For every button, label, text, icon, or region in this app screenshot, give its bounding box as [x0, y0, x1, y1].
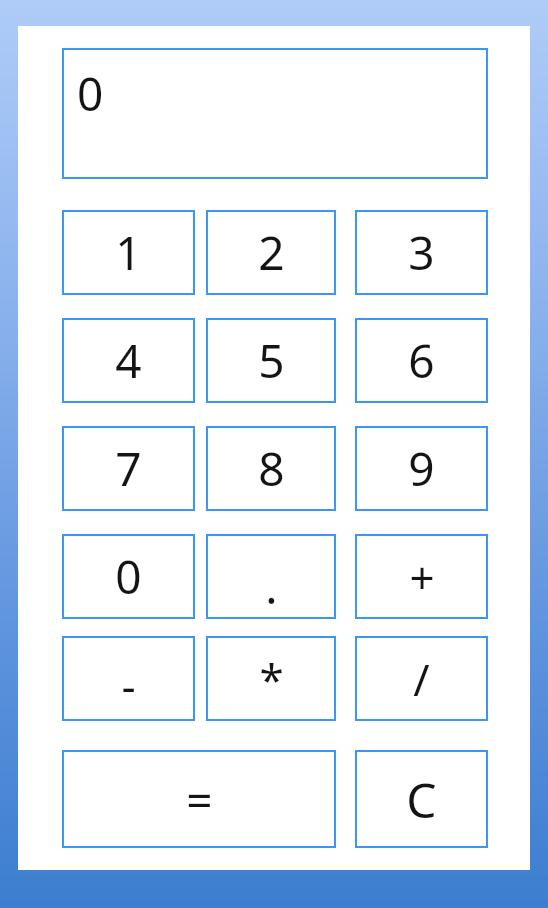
staticText: 0	[77, 62, 104, 125]
button[interactable]: 3	[355, 210, 488, 295]
button[interactable]: Divide	[355, 636, 488, 721]
staticText: 3	[408, 221, 435, 284]
staticText: 1	[115, 221, 142, 284]
staticText: *	[259, 649, 284, 709]
button[interactable]: 1	[62, 210, 195, 295]
staticText: =	[186, 768, 213, 831]
button[interactable]: Clear	[355, 750, 488, 848]
staticText: 0	[115, 545, 142, 608]
button[interactable]: Decimal point	[206, 534, 336, 619]
button[interactable]: Display	[62, 48, 488, 179]
staticText: 8	[258, 437, 285, 500]
button[interactable]: Minus	[62, 636, 195, 721]
button[interactable]: 4	[62, 318, 195, 403]
staticText: 7	[115, 437, 142, 500]
staticText: +	[409, 547, 435, 607]
staticText: 6	[408, 329, 435, 392]
button[interactable]: 0	[62, 534, 195, 619]
staticText: 9	[408, 437, 435, 500]
staticText: -	[121, 655, 136, 715]
button[interactable]: 7	[62, 426, 195, 511]
staticText: 4	[115, 329, 142, 392]
staticText: .	[265, 555, 278, 618]
button[interactable]: Equals	[62, 750, 336, 848]
button[interactable]: 6	[355, 318, 488, 403]
button[interactable]: 8	[206, 426, 336, 511]
staticText: 2	[258, 221, 285, 284]
staticText: 5	[258, 329, 285, 392]
button[interactable]: Multiply	[206, 636, 336, 721]
staticText: C	[406, 767, 437, 832]
button[interactable]: 2	[206, 210, 336, 295]
button[interactable]: 9	[355, 426, 488, 511]
button[interactable]: Plus	[355, 534, 488, 619]
button[interactable]: 5	[206, 318, 336, 403]
staticText: /	[413, 649, 430, 709]
